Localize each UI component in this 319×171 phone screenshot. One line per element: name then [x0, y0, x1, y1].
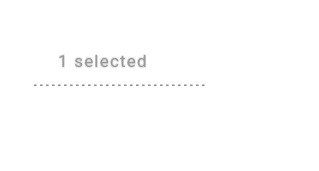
button[interactable]: 1 selected	[34, 44, 205, 92]
staticText: 1 selected	[58, 51, 148, 71]
